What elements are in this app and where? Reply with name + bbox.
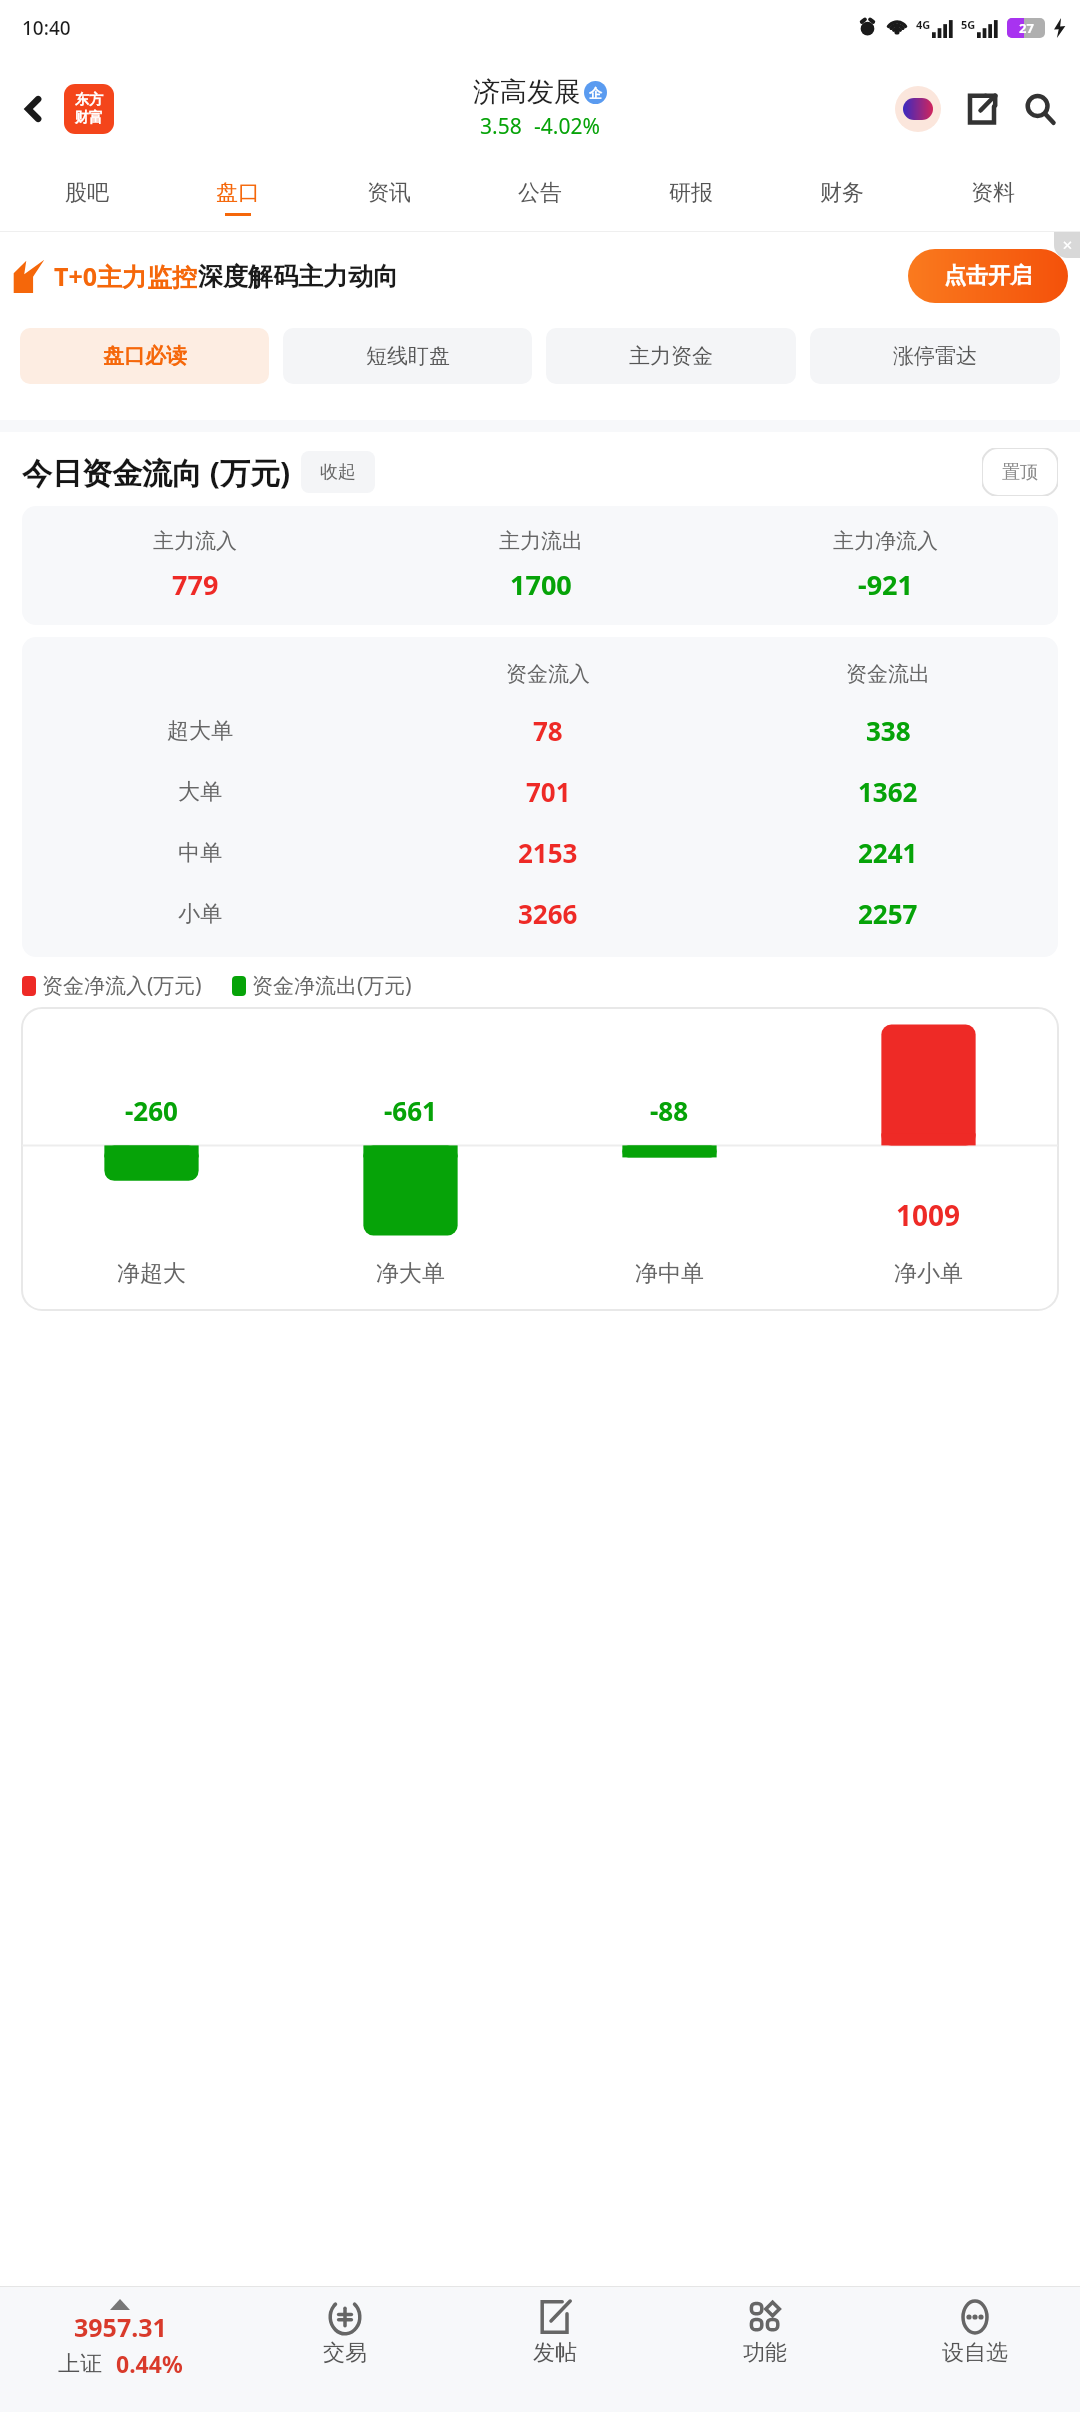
staticText: 2257 — [858, 896, 918, 931]
staticText: 短线盯盘 — [366, 343, 450, 369]
button[interactable]: AI Assistant — [892, 83, 944, 135]
staticText: 置顶 — [1002, 461, 1038, 484]
staticText: 净大单 — [376, 1259, 445, 1288]
staticText: 资讯 — [367, 179, 411, 207]
button[interactable]: 资料 — [917, 163, 1068, 231]
staticText: -661 — [384, 1093, 437, 1128]
button[interactable]: Share — [956, 83, 1008, 135]
staticText: 701 — [526, 774, 571, 809]
button[interactable]: 设自选 — [870, 2287, 1080, 2412]
button[interactable]: 置顶 — [982, 448, 1058, 496]
staticText: 研报 — [669, 179, 713, 207]
button[interactable]: Back — [8, 83, 60, 135]
button[interactable]: 股吧 — [12, 163, 162, 231]
staticText: 1700 — [510, 566, 572, 603]
button[interactable]: Search — [1014, 83, 1066, 135]
staticText: -4.02% — [534, 112, 600, 141]
staticText: 发帖 — [533, 2339, 577, 2367]
staticText: 主力流出 — [499, 528, 583, 554]
staticText: 主力资金 — [629, 343, 713, 369]
staticText: 1362 — [858, 774, 918, 809]
button[interactable]: 东方财富 — [64, 84, 114, 134]
staticText: 设自选 — [942, 2339, 1008, 2367]
staticText: 济高发展 — [473, 75, 581, 109]
staticText: -88 — [650, 1093, 689, 1128]
staticText: 资料 — [971, 179, 1015, 207]
button[interactable]: 盘口必读 — [20, 328, 269, 384]
staticText: 3957.31 — [74, 2310, 167, 2344]
staticText: 盘口 — [216, 179, 260, 207]
staticText: 涨停雷达 — [893, 343, 977, 369]
staticText: 盘口必读 — [103, 343, 187, 369]
staticText: 779 — [172, 566, 219, 603]
staticText: -260 — [125, 1093, 178, 1128]
staticText: 78 — [533, 713, 563, 748]
button[interactable]: 交易 — [240, 2287, 450, 2412]
button[interactable]: 发帖 — [450, 2287, 660, 2412]
button[interactable]: 短线盯盘 — [283, 328, 532, 384]
button[interactable]: 盘口 — [162, 163, 313, 231]
staticText: 超大单 — [167, 717, 233, 745]
staticText: 公告 — [518, 179, 562, 207]
staticText: 财务 — [820, 179, 864, 207]
staticText: 中单 — [178, 839, 222, 867]
staticText: 点击开启 — [944, 262, 1032, 290]
staticText: 净超大 — [117, 1259, 186, 1288]
staticText: 小单 — [178, 900, 222, 928]
staticText: 3266 — [518, 896, 578, 931]
staticText: 2241 — [858, 835, 918, 870]
staticText: 交易 — [323, 2339, 367, 2367]
button[interactable]: 收起 — [301, 451, 375, 493]
button[interactable]: 公告 — [464, 163, 615, 231]
staticText: 0.44% — [116, 2348, 183, 2379]
staticText: 东方 — [75, 91, 103, 109]
staticText: 10:40 — [22, 15, 71, 41]
staticText: 净小单 — [894, 1259, 963, 1288]
staticText: T+0主力监控 — [54, 259, 198, 293]
staticText: 主力净流入 — [833, 528, 938, 554]
button[interactable]: 功能 — [660, 2287, 870, 2412]
staticText: 资金净流出(万元) — [252, 971, 412, 1000]
staticText: 338 — [866, 713, 911, 748]
staticText: 3.58 — [480, 112, 522, 141]
staticText: -921 — [858, 566, 913, 603]
staticText: ✕ — [1062, 238, 1073, 253]
staticText: 5G — [961, 17, 976, 32]
staticText: 1009 — [896, 1196, 961, 1234]
button[interactable]: 研报 — [615, 163, 766, 231]
staticText: 今日资金流向 (万元) — [22, 452, 291, 493]
staticText: 股吧 — [65, 179, 109, 207]
staticText: 企 — [589, 85, 602, 101]
staticText: 上证 — [58, 2350, 102, 2378]
staticText: 净中单 — [635, 1259, 704, 1288]
staticText: 主力流入 — [153, 528, 237, 554]
staticText: 资金流出 — [846, 661, 930, 687]
button[interactable]: 3957.31 — [0, 2287, 240, 2412]
button[interactable]: 涨停雷达 — [810, 328, 1060, 384]
button[interactable]: 点击开启 — [908, 249, 1068, 303]
staticText: 功能 — [743, 2339, 787, 2367]
button[interactable]: 主力资金 — [546, 328, 796, 384]
staticText: 4G — [916, 17, 931, 32]
button[interactable]: 财务 — [766, 163, 917, 231]
staticText: 27 — [1019, 19, 1034, 37]
staticText: 收起 — [320, 461, 356, 484]
staticText: 大单 — [178, 778, 222, 806]
button[interactable]: 资讯 — [313, 163, 464, 231]
staticText: 资金流入 — [506, 661, 590, 687]
staticText: 财富 — [75, 109, 103, 127]
staticText: 深度解码主力动向 — [198, 261, 398, 292]
button[interactable]: Close — [1054, 232, 1080, 258]
staticText: 2153 — [518, 835, 578, 870]
staticText: 资金净流入(万元) — [42, 971, 202, 1000]
